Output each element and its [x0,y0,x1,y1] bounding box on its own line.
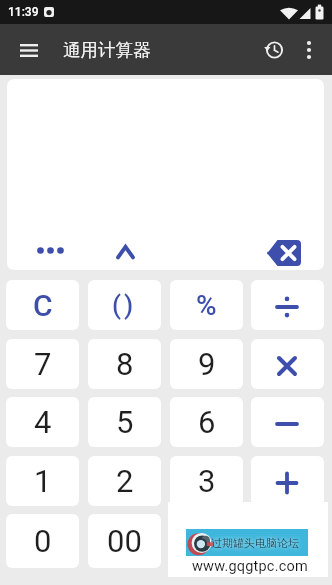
staticText: 7 [34,346,52,382]
staticText: 4 [34,404,52,440]
button[interactable] [28,234,72,266]
button[interactable]: % [170,280,243,330]
staticText: 1 [34,463,52,499]
button[interactable]: 2 [88,456,161,506]
button[interactable]: 4 [6,397,79,447]
staticText: 0 [34,523,52,559]
staticText: 5 [116,404,134,440]
button[interactable]: . [170,514,243,568]
button[interactable]: 8 [88,339,161,389]
staticText: () [112,290,137,320]
staticText: C [33,288,53,323]
staticText: 2 [116,463,134,499]
staticText: . [202,523,211,559]
button[interactable] [257,33,291,67]
staticText: 11:39 [8,5,39,19]
staticText: 00 [107,523,142,559]
staticText: % [196,289,217,322]
button[interactable]: 9 [170,339,243,389]
staticText: www.gqgtpc.com [192,558,308,575]
button[interactable] [251,339,324,389]
button[interactable]: 7 [6,339,79,389]
button[interactable]: 3 [170,456,243,506]
button[interactable] [12,33,46,67]
button[interactable] [251,514,324,568]
button[interactable]: 00 [88,514,161,568]
staticText: 8 [116,346,134,382]
staticText: 过期罐头电脑论坛 [211,536,299,550]
button[interactable] [251,280,324,330]
button[interactable]: () [88,280,161,330]
staticText: 6 [198,404,216,440]
staticText: 3 [198,463,216,499]
button[interactable]: 5 [88,397,161,447]
button[interactable] [262,236,306,270]
button[interactable] [251,397,324,447]
button[interactable]: C [6,280,79,330]
button[interactable]: 1 [6,456,79,506]
button[interactable] [251,456,324,506]
button[interactable]: 0 [6,514,79,568]
button[interactable] [106,236,144,268]
staticText: 9 [198,346,216,382]
staticText: 通用计算器 [63,39,151,61]
button[interactable]: 6 [170,397,243,447]
button[interactable] [294,33,324,67]
